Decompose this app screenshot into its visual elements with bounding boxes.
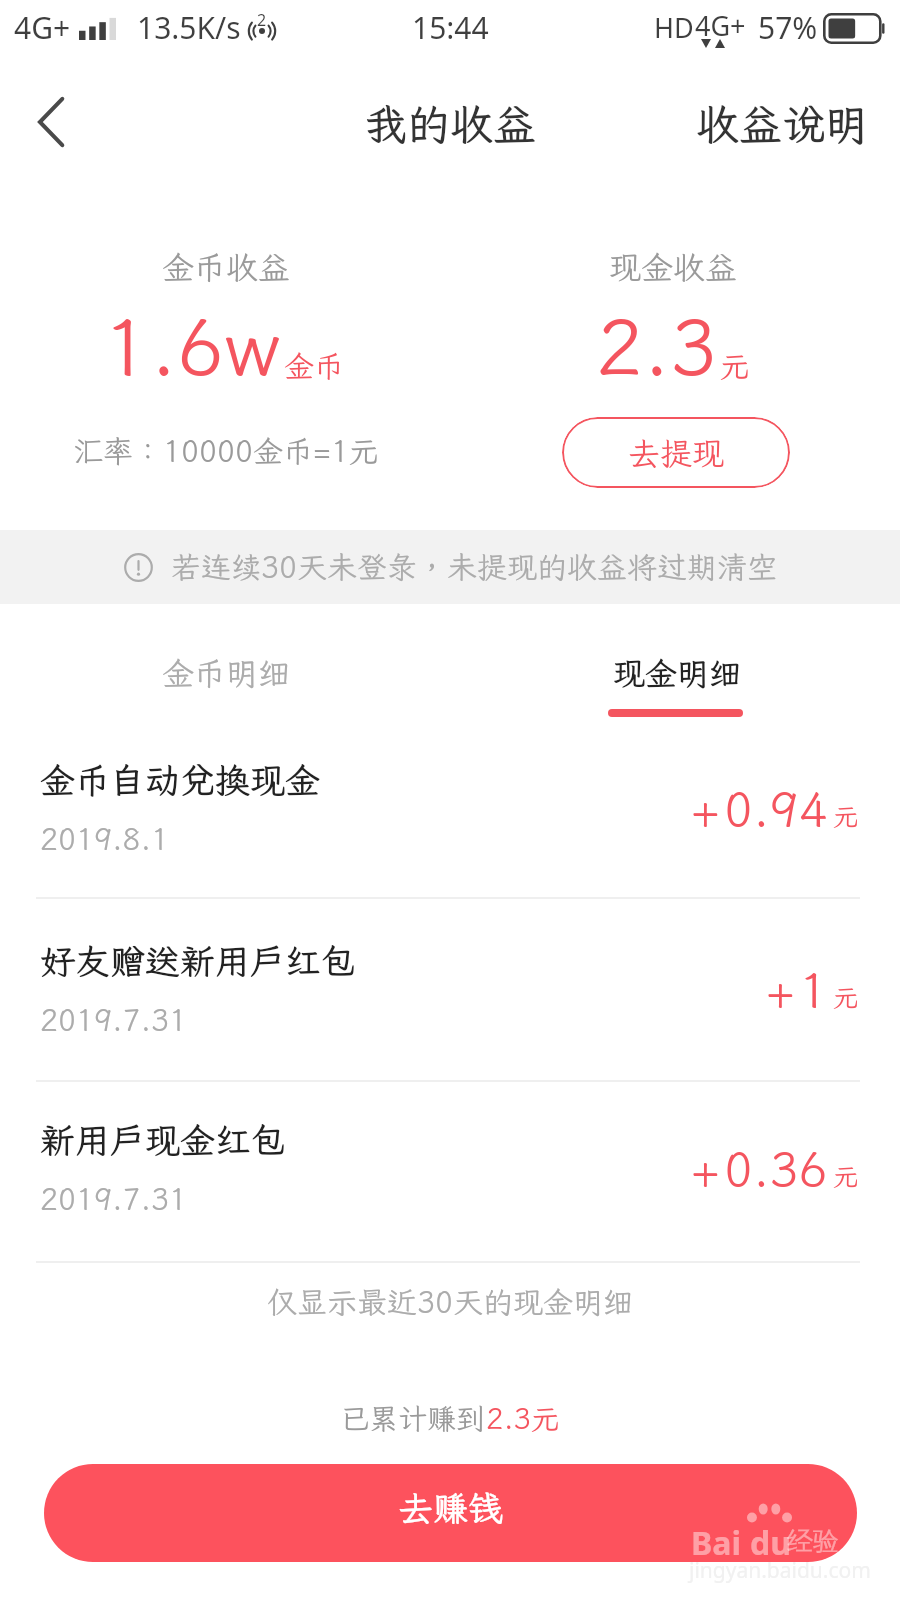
staticText: 金币自动兑换现金 (40, 757, 321, 803)
staticText: 元 (720, 346, 750, 386)
staticText: 0.36 (724, 1136, 828, 1199)
staticText: 好友赠送新用户红包 (40, 938, 356, 984)
staticText: + (691, 776, 720, 839)
button[interactable]: 金币明细 (26, 630, 426, 716)
staticText: 金币 (284, 346, 344, 386)
staticText: 2.3 (596, 295, 717, 398)
staticText: + (691, 1136, 720, 1199)
staticText: 4G+ (695, 7, 746, 44)
staticText: 元 (833, 1159, 860, 1193)
staticText: 收益说明 (696, 96, 868, 153)
staticText: 金币明细 (162, 652, 291, 694)
button[interactable]: Back (15, 86, 87, 158)
staticText: 元 (833, 799, 860, 833)
staticText: 1.6w (103, 295, 281, 398)
staticText: 经验 (787, 1525, 839, 1558)
staticText: HD (654, 9, 694, 46)
staticText: 元 (531, 1399, 561, 1437)
staticText: 去赚钱 (398, 1485, 504, 1531)
button[interactable]: 去赚钱 (44, 1464, 857, 1562)
staticText: Bai (691, 1521, 742, 1565)
staticText: 13.5K/s (137, 7, 241, 48)
staticText: 汇率：10000金币=1元 (73, 431, 379, 471)
staticText: 2 (257, 9, 267, 31)
staticText: 2019.7.31 (40, 1179, 187, 1219)
staticText: 元 (833, 980, 860, 1014)
staticText: 1 (799, 957, 828, 1020)
button[interactable]: 去提现 (562, 417, 790, 488)
button[interactable]: 好友赠送新用户红包 (0, 898, 900, 1079)
staticText: du (750, 1521, 792, 1565)
staticText: 2019.8.1 (40, 819, 169, 859)
button[interactable]: 现金明细 (477, 630, 877, 716)
staticText: 现金收益 (609, 246, 738, 288)
staticText: 4G+ (14, 7, 71, 48)
button[interactable]: 金币自动兑换现金 (0, 717, 900, 898)
staticText: 15:44 (412, 7, 489, 48)
staticText: 2.3 (486, 1399, 531, 1437)
button[interactable]: 收益说明 (674, 74, 900, 175)
staticText: 2019.7.31 (40, 1000, 187, 1040)
staticText: 若连续30天未登录，未提现的收益将过期清空 (171, 547, 777, 587)
staticText: 现金明细 (613, 652, 742, 694)
staticText: jingyan.baidu.com (689, 1556, 871, 1585)
staticText: 新用户现金红包 (40, 1117, 286, 1163)
staticText: 57% (758, 7, 818, 48)
staticText: 0.94 (724, 776, 828, 839)
staticText: 我的收益 (364, 96, 536, 153)
button[interactable]: 新用户现金红包 (0, 1077, 900, 1258)
staticText: 金币收益 (162, 246, 291, 288)
staticText: 仅显示最近30天的现金明细 (267, 1282, 633, 1322)
staticText: + (766, 957, 795, 1020)
staticText: 已累计赚到 (340, 1399, 486, 1437)
staticText: 去提现 (628, 432, 725, 474)
